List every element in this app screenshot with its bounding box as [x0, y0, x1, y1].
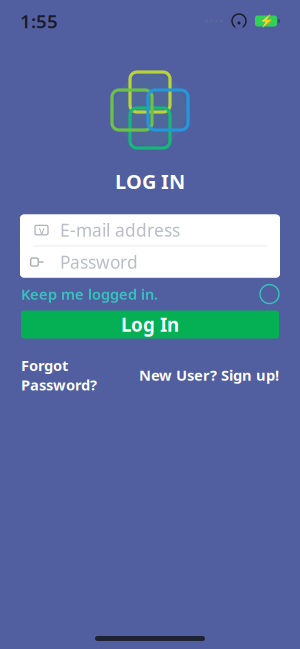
- staticText: E-mail address: [60, 219, 180, 242]
- staticText: 1:55: [20, 9, 58, 33]
- button[interactable]: v: [20, 215, 280, 246]
- button[interactable]: New User? Sign up!: [139, 359, 279, 391]
- staticText: ⚡: [258, 14, 273, 28]
- button[interactable]: Forgot Password?: [21, 350, 97, 401]
- staticText: Password: [60, 251, 138, 274]
- staticText: Log In: [121, 312, 179, 337]
- staticText: LOG IN: [115, 168, 185, 195]
- button[interactable]: Keep me logged in.: [0, 278, 300, 311]
- button[interactable]: Log In: [21, 311, 279, 339]
- staticText: Keep me logged in.: [21, 284, 158, 304]
- staticText: New User? Sign up!: [139, 365, 279, 385]
- staticText: Forgot Password?: [21, 356, 97, 395]
- staticText: v: [39, 223, 44, 237]
- button[interactable]: Password: [20, 247, 280, 278]
